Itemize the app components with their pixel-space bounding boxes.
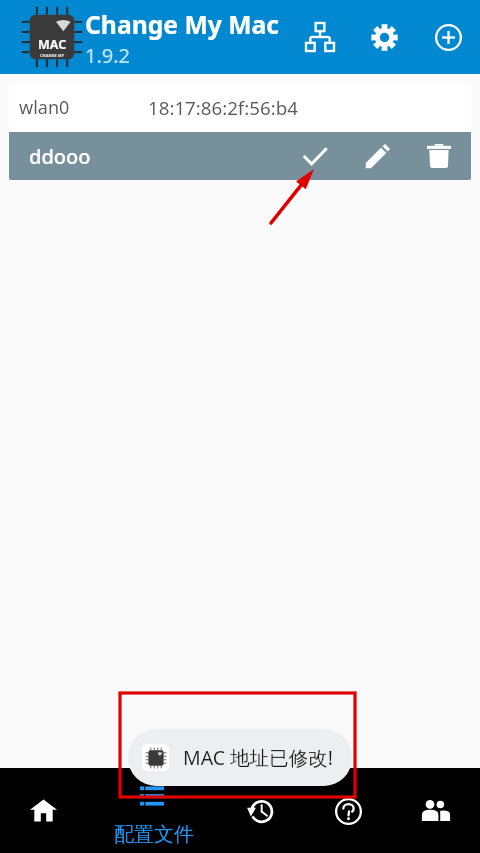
staticText: Change My Mac [85,8,280,42]
staticText: MAC [38,36,67,53]
staticText: wlan0 [19,95,70,120]
button[interactable]: ddooo [9,132,471,180]
staticText: 1.9.2 [85,42,131,69]
staticText: CHANGE MY [40,53,65,58]
staticText: 配置文件 [114,822,194,847]
button[interactable]: Contacts [384,768,480,853]
staticText: ddooo [29,143,91,170]
button[interactable]: Network interfaces [296,13,344,61]
button[interactable]: wlan0 [9,83,471,132]
staticText: MAC 地址已修改! [183,744,333,771]
button[interactable]: Edit [353,132,401,180]
button[interactable]: Settings [360,13,408,61]
button[interactable]: Delete [415,132,463,180]
button[interactable]: History [192,768,288,853]
button[interactable]: Add profile [424,13,472,61]
staticText: 18:17:86:2f:56:b4 [148,95,298,120]
button[interactable]: Help [288,768,384,853]
button[interactable]: Home [0,768,96,853]
button[interactable]: Apply [291,132,339,180]
button[interactable]: Profiles [96,768,192,853]
